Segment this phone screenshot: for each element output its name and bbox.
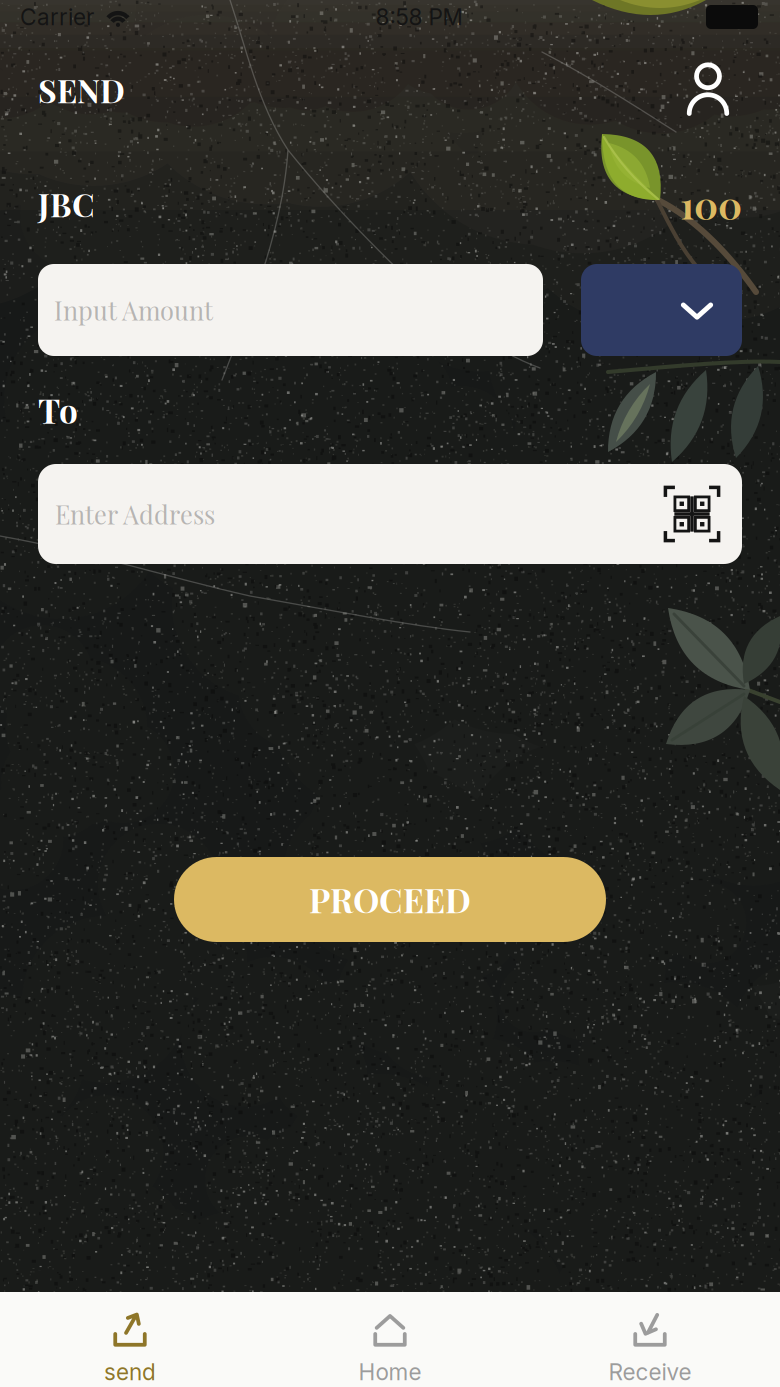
staticText: 8:58 PM bbox=[375, 3, 462, 31]
staticText: Receive bbox=[608, 1358, 691, 1386]
button[interactable]: Home bbox=[260, 1287, 520, 1387]
staticText: JBC bbox=[38, 183, 95, 225]
staticText: Enter Address bbox=[55, 497, 215, 531]
staticText: Home bbox=[358, 1358, 421, 1386]
button[interactable]: send bbox=[0, 1287, 260, 1387]
staticText: PROCEED bbox=[309, 877, 471, 922]
staticText: send bbox=[104, 1358, 156, 1386]
button[interactable]: Select token bbox=[581, 264, 742, 356]
staticText: Input Amount bbox=[54, 293, 213, 327]
button[interactable]: Profile bbox=[674, 56, 742, 124]
staticText: Carrier bbox=[20, 3, 94, 31]
staticText: To bbox=[38, 388, 78, 432]
staticText: SEND bbox=[38, 69, 125, 111]
button[interactable]: Receive bbox=[520, 1287, 780, 1387]
button[interactable]: Scan QR code bbox=[658, 480, 726, 548]
button[interactable]: PROCEED bbox=[174, 857, 606, 942]
staticText: 100 bbox=[680, 179, 742, 229]
